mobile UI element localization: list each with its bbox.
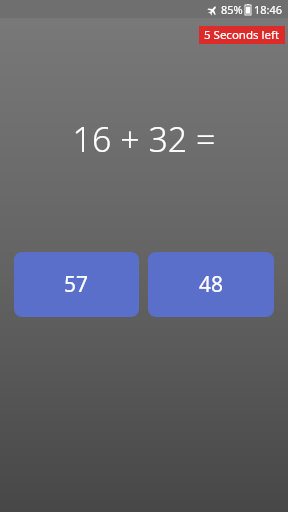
staticText: 57	[64, 270, 89, 299]
other: Airplane mode	[208, 5, 218, 15]
button[interactable]: 5 Seconds left	[199, 26, 285, 44]
button[interactable]: 48	[148, 252, 274, 317]
button[interactable]: 57	[14, 252, 139, 317]
staticText: 5 Seconds left	[204, 27, 280, 43]
staticText: 16 + 32 =	[72, 116, 216, 162]
other: Battery 85 percent	[245, 4, 251, 15]
staticText: 18:46	[254, 2, 283, 17]
staticText: 85%	[221, 2, 243, 17]
staticText: 48	[199, 270, 224, 299]
